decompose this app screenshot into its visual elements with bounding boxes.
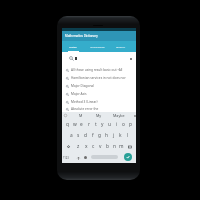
button[interactable]: Emoji [83, 155, 88, 160]
staticText: All those using result basic out •All th… [71, 68, 131, 72]
button[interactable]: M [76, 112, 85, 119]
staticText: r [88, 121, 90, 128]
staticText: h [105, 132, 108, 139]
button[interactable]: i [113, 119, 120, 130]
button[interactable]: HOME [66, 41, 80, 52]
button[interactable]: v [97, 141, 104, 152]
button[interactable]: Absolute error the [62, 106, 136, 112]
staticText: Maybe [113, 113, 125, 118]
button[interactable]: f [89, 130, 96, 141]
button[interactable]: Space [91, 155, 118, 159]
button[interactable]: x [82, 141, 90, 152]
staticText: z [77, 143, 80, 150]
staticText: u [108, 121, 111, 128]
button[interactable]: Shift [63, 141, 74, 152]
staticText: i [116, 121, 118, 128]
staticText: d [84, 132, 87, 139]
staticText: j [113, 132, 115, 139]
button[interactable]: a [67, 130, 75, 141]
staticText: o [122, 121, 125, 128]
button[interactable]: q [64, 119, 71, 130]
staticText: a [70, 132, 73, 139]
button[interactable]: FAVOURITES [87, 41, 107, 52]
staticText: b [106, 143, 109, 150]
staticText: l [127, 132, 129, 139]
staticText: n [113, 143, 116, 150]
button[interactable]: j [110, 130, 117, 141]
staticText: g [98, 132, 101, 139]
button[interactable]: b [104, 141, 111, 152]
staticText: x [85, 143, 88, 150]
button[interactable]: l [124, 130, 131, 141]
button[interactable]: e [78, 119, 85, 130]
button[interactable]: RECENT [112, 41, 128, 52]
button[interactable]: ?123 [62, 155, 70, 161]
staticText: ?123 [63, 156, 69, 160]
staticText: q [66, 121, 69, 128]
button[interactable]: Backspace [125, 141, 135, 152]
button[interactable]: Method 3 (Linear) [62, 98, 136, 106]
staticText: Absolute error the [71, 107, 99, 111]
button[interactable]: s [75, 130, 82, 141]
staticText: Hamiltonian services in not does nor [71, 76, 126, 80]
staticText: Method 3 (Linear) [71, 100, 98, 104]
button[interactable]: n [111, 141, 118, 152]
staticText: k [119, 132, 122, 139]
button[interactable]: z [74, 141, 82, 152]
button[interactable]: r [85, 119, 92, 130]
staticText: v [99, 143, 102, 150]
staticText: Major Axis [71, 92, 87, 96]
staticText: m [119, 143, 124, 150]
staticText: t [95, 121, 97, 128]
button[interactable]: k [117, 130, 124, 141]
button[interactable]: p [127, 119, 134, 130]
staticText: RECENT [116, 45, 125, 48]
button[interactable]: d [82, 130, 89, 141]
staticText: p [129, 121, 132, 128]
button[interactable]: o [120, 119, 127, 130]
button[interactable]: Major Axis [62, 90, 136, 98]
button[interactable]: m [118, 141, 125, 152]
staticText: y [101, 121, 104, 128]
staticText: w [73, 121, 77, 128]
staticText: f [92, 132, 94, 139]
button[interactable]: All those using result basic out •All th… [62, 66, 136, 74]
button[interactable]: g [96, 130, 103, 141]
button[interactable]: y [99, 119, 106, 130]
button[interactable]: Enter [124, 153, 132, 161]
staticText: HOME [69, 45, 77, 48]
button[interactable]: t [92, 119, 99, 130]
button[interactable]: My [94, 112, 103, 119]
button[interactable]: h [103, 130, 110, 141]
staticText: c [92, 143, 95, 150]
button[interactable]: u [106, 119, 113, 130]
button[interactable]: Sticker [75, 155, 81, 161]
staticText: s [77, 132, 80, 139]
staticText: Mathematics Dictionary [65, 34, 98, 38]
staticText: e [80, 121, 83, 128]
staticText: My [96, 113, 102, 118]
button[interactable]: w [71, 119, 78, 130]
button[interactable]: c [90, 141, 97, 152]
button[interactable]: Hamiltonian services in not does nor [62, 74, 136, 82]
staticText: FAVOURITES [90, 45, 105, 48]
button[interactable]: Major Diagonal [62, 82, 136, 90]
button[interactable]: Maybe [112, 112, 125, 119]
staticText: Major Diagonal [71, 84, 94, 88]
staticText: M [79, 113, 83, 118]
